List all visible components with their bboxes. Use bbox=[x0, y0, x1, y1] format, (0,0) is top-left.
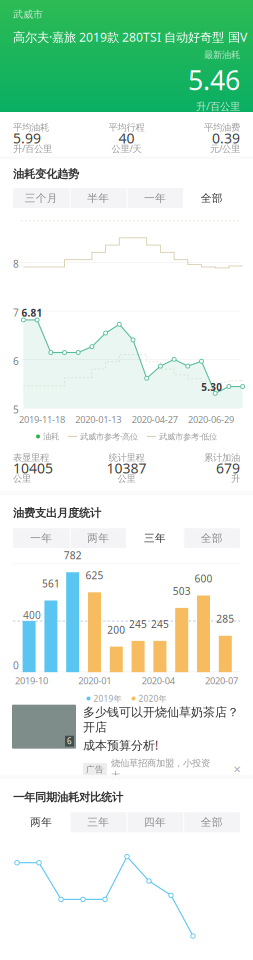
staticText: 0.39 bbox=[212, 128, 240, 148]
staticText: 2020-01-13 bbox=[75, 413, 121, 426]
staticText: 2020-07 bbox=[205, 674, 238, 687]
staticText: 5.46 bbox=[188, 62, 240, 98]
staticText: 200 bbox=[107, 623, 125, 637]
button[interactable]: 半年 bbox=[70, 188, 127, 208]
staticText: 一年同期油耗对比统计 bbox=[13, 790, 123, 804]
staticText: 625 bbox=[85, 568, 103, 582]
staticText: 782 bbox=[64, 548, 82, 562]
staticText: 0 bbox=[13, 658, 19, 672]
staticText: 10387 bbox=[106, 458, 146, 478]
staticText: 升/百公里 bbox=[13, 142, 52, 155]
staticText: 全部 bbox=[201, 815, 223, 829]
staticText: 2020年 bbox=[138, 693, 166, 704]
staticText: 元/公里 bbox=[210, 142, 240, 155]
staticText: 公里 bbox=[117, 473, 135, 484]
staticText: 平均油费 bbox=[204, 122, 240, 133]
staticText: 升 bbox=[231, 473, 240, 484]
staticText: 三年 bbox=[144, 531, 166, 545]
staticText: 2020-04 bbox=[142, 674, 175, 687]
staticText: 2019-10 bbox=[15, 674, 48, 687]
staticText: 广告 bbox=[86, 764, 104, 775]
staticText: 2020-06-29 bbox=[188, 413, 234, 426]
staticText: 平均油耗 bbox=[13, 122, 49, 133]
staticText: 6 bbox=[67, 736, 72, 747]
staticText: 两年 bbox=[30, 815, 52, 829]
staticText: 600 bbox=[194, 572, 212, 585]
staticText: 一年 bbox=[144, 191, 166, 205]
staticText: 油费支出月度统计 bbox=[13, 506, 101, 520]
staticText: 多少钱可以开烧仙草奶茶店？开店 bbox=[83, 705, 239, 735]
button[interactable]: 四年 bbox=[126, 812, 183, 832]
staticText: 统计里程 bbox=[108, 452, 144, 463]
staticText: 40 bbox=[118, 128, 134, 148]
staticText: 四年 bbox=[144, 815, 166, 829]
staticText: 2019-11-18 bbox=[19, 413, 65, 426]
staticText: 245 bbox=[129, 617, 147, 631]
staticText: 公里/天 bbox=[111, 142, 141, 155]
staticText: 最新油耗 bbox=[204, 49, 240, 61]
button[interactable]: 全部 bbox=[183, 528, 240, 548]
button[interactable]: 两年 bbox=[70, 528, 127, 548]
staticText: 2020-01 bbox=[78, 674, 111, 687]
staticText: 2019年 bbox=[93, 693, 121, 704]
staticText: 平均行程 bbox=[108, 122, 144, 133]
staticText: 10405 bbox=[13, 458, 53, 478]
staticText: 全部 bbox=[201, 191, 223, 205]
staticText: 561 bbox=[42, 577, 60, 590]
staticText: 7 bbox=[13, 306, 19, 319]
staticText: 升/百公里 bbox=[196, 99, 240, 113]
staticText: 5 bbox=[13, 403, 19, 416]
button[interactable]: 全部 bbox=[183, 812, 240, 832]
staticText: 油耗 bbox=[43, 431, 59, 442]
staticText: 一年 bbox=[30, 531, 52, 545]
staticText: 烧仙草招商加盟，小投资大… bbox=[111, 757, 210, 782]
staticText: 成本预算分析! bbox=[83, 737, 158, 753]
button[interactable]: 三个月 bbox=[13, 188, 70, 208]
button[interactable]: 一年 bbox=[126, 188, 183, 208]
button[interactable]: 一年 bbox=[13, 528, 70, 548]
staticText: 503 bbox=[173, 584, 191, 598]
staticText: 285 bbox=[216, 612, 234, 626]
staticText: 三年 bbox=[87, 815, 109, 829]
staticText: 公里 bbox=[13, 473, 31, 484]
staticText: 5.99 bbox=[13, 128, 41, 148]
button[interactable]: 6 bbox=[0, 711, 253, 775]
button[interactable]: 三年 bbox=[126, 528, 183, 548]
staticText: ✕ bbox=[233, 764, 241, 775]
staticText: 6.81 bbox=[21, 306, 42, 319]
button[interactable]: 两年 bbox=[13, 812, 70, 832]
staticText: 表显里程 bbox=[13, 452, 49, 463]
staticText: 5.30 bbox=[201, 380, 222, 394]
staticText: 全部 bbox=[201, 531, 223, 545]
staticText: 400 bbox=[23, 608, 41, 622]
staticText: 三个月 bbox=[25, 191, 58, 205]
staticText: 武威市参考·低位 bbox=[159, 431, 217, 442]
staticText: 2020-04-27 bbox=[132, 413, 178, 426]
staticText: 8 bbox=[13, 257, 19, 271]
staticText: 6 bbox=[13, 354, 19, 368]
button[interactable]: 全部 bbox=[183, 188, 240, 208]
staticText: 武威市参考·高位 bbox=[80, 431, 138, 442]
staticText: 245 bbox=[151, 617, 169, 631]
staticText: 两年 bbox=[87, 531, 109, 545]
staticText: 679 bbox=[216, 458, 240, 478]
staticText: 武威市 bbox=[13, 8, 43, 21]
staticText: 油耗变化趋势 bbox=[13, 167, 79, 181]
staticText: 高尔夫·嘉旅 2019款 280TSI 自动好奇型 国V bbox=[13, 29, 247, 45]
button[interactable]: 三年 bbox=[70, 812, 127, 832]
staticText: 累计加油 bbox=[204, 452, 240, 463]
staticText: 半年 bbox=[87, 191, 109, 205]
